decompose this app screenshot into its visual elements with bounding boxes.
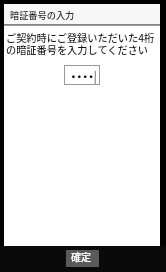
staticText: 確定: [71, 249, 91, 263]
button[interactable]: 確定: [66, 250, 99, 267]
staticText: ご契約時にご登録いただいた4桁の暗証番号を入力してください: [6, 30, 158, 57]
button[interactable]: [64, 65, 100, 85]
staticText: 暗証番号の入力: [10, 8, 75, 21]
